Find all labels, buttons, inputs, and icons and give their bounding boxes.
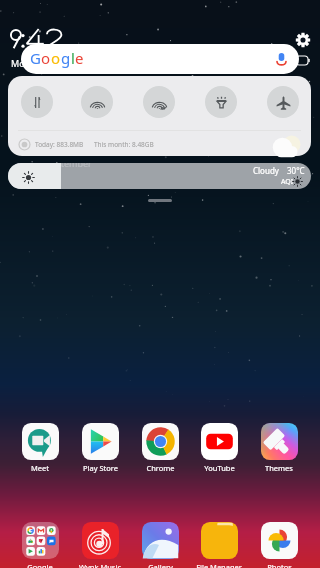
other: Mobile data bbox=[30, 95, 45, 110]
staticText: AQI bbox=[281, 177, 294, 187]
button[interactable]: Voice search bbox=[277, 53, 286, 66]
staticText: Photos bbox=[267, 562, 292, 568]
staticText: g bbox=[61, 48, 71, 68]
button[interactable]: Wi-Fi bbox=[81, 86, 113, 118]
button[interactable]: Photos bbox=[250, 522, 308, 568]
staticText: Play Store bbox=[83, 463, 118, 473]
other: Flashlight bbox=[214, 95, 229, 110]
button[interactable]: Settings bbox=[295, 32, 311, 48]
staticText: File Manager bbox=[196, 562, 242, 568]
staticText: Meet bbox=[31, 463, 49, 473]
button[interactable]: Wynk Music bbox=[71, 522, 129, 568]
button[interactable]: YouTube bbox=[190, 423, 248, 473]
staticText: This month: 8.48GB bbox=[94, 140, 154, 149]
staticText: Google bbox=[27, 562, 53, 568]
button[interactable]: Meet bbox=[11, 423, 69, 473]
button[interactable]: Google bbox=[11, 522, 69, 568]
staticText: G bbox=[30, 48, 41, 68]
button[interactable]: Play Store bbox=[71, 423, 129, 473]
staticText: Chrome bbox=[146, 463, 175, 473]
staticText: o bbox=[51, 48, 61, 68]
staticText: Mon 07 September bbox=[11, 57, 92, 69]
button[interactable]: File Manager bbox=[190, 522, 248, 568]
button[interactable]: Gallery bbox=[131, 522, 189, 568]
other: Wi-Fi bbox=[90, 95, 105, 110]
staticText: Cloudy bbox=[253, 165, 279, 176]
other: Hotspot bbox=[152, 95, 167, 110]
staticText: Gallery bbox=[148, 562, 173, 568]
button[interactable]: Chrome bbox=[131, 423, 189, 473]
button[interactable]: Airplane mode bbox=[267, 86, 299, 118]
button[interactable]: Mobile data bbox=[21, 86, 53, 118]
staticText: Themes bbox=[265, 463, 293, 473]
button[interactable]: Google Search bbox=[21, 44, 299, 74]
staticText: 30°C bbox=[287, 165, 305, 176]
button[interactable]: Brightness bbox=[8, 163, 311, 189]
staticText: l bbox=[71, 48, 75, 68]
button[interactable]: Themes bbox=[250, 423, 308, 473]
staticText: e bbox=[75, 48, 84, 68]
staticText: YouTube bbox=[204, 463, 235, 473]
button[interactable]: Flashlight bbox=[205, 86, 237, 118]
other: Battery bbox=[296, 56, 310, 65]
staticText: Today: 883.8MB bbox=[35, 140, 84, 149]
staticText: Mon 07 September bbox=[11, 163, 92, 169]
other: Airplane mode bbox=[276, 95, 291, 110]
staticText: o bbox=[41, 48, 51, 68]
button[interactable]: Hotspot bbox=[143, 86, 175, 118]
staticText: Wynk Music bbox=[79, 562, 121, 568]
